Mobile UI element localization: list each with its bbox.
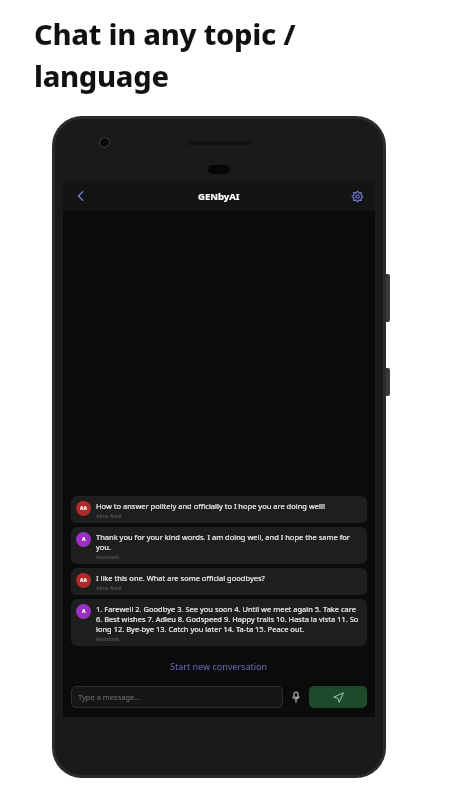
button[interactable]: AA [71, 568, 367, 595]
button[interactable]: Send [309, 686, 367, 708]
staticText: I like this one. What are some official … [96, 573, 265, 583]
staticText: AA [80, 577, 87, 584]
button[interactable]: A [71, 599, 367, 646]
staticText: A [82, 536, 86, 543]
staticText: Type a message... [78, 692, 141, 702]
button[interactable]: Voice input [283, 684, 309, 710]
staticText: GENbyAI [198, 190, 240, 203]
button[interactable]: Back [69, 184, 93, 208]
staticText: Alice Alice [96, 584, 122, 591]
staticText: 1. Farewell 2. Goodbye 3. See you soon 4… [96, 604, 359, 634]
button[interactable]: Start new conversation [63, 656, 375, 676]
button[interactable]: Type a message... [71, 686, 283, 708]
staticText: How to answer politely and officially to… [96, 501, 325, 511]
staticText: AA [80, 505, 87, 512]
staticText: Thank you for your kind words. I am doin… [96, 532, 359, 552]
staticText: Assistant [96, 553, 120, 560]
staticText: Alice Alice [96, 512, 122, 519]
staticText: language [34, 56, 169, 95]
button[interactable]: Settings [345, 184, 369, 208]
button[interactable]: AA [71, 496, 367, 523]
staticText: Assistant [96, 635, 120, 642]
staticText: Chat in any topic / [34, 14, 296, 53]
staticText: Start new conversation [170, 660, 268, 672]
staticText: A [82, 608, 86, 615]
button[interactable]: A [71, 527, 367, 564]
